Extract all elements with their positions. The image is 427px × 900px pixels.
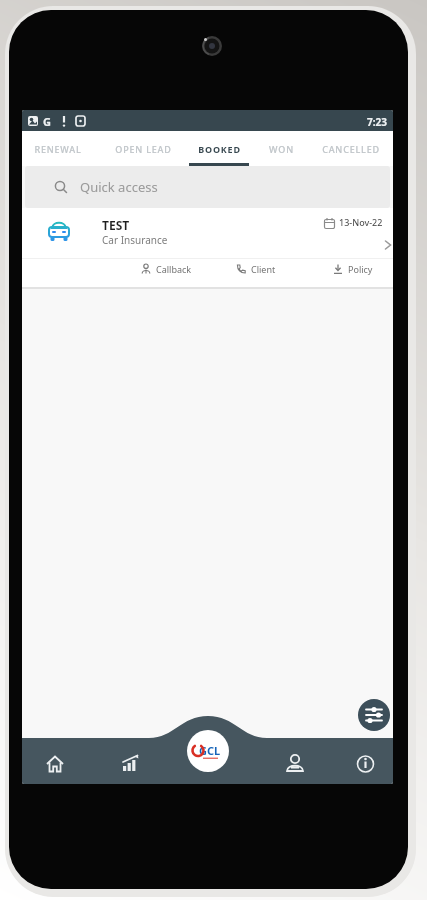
staticText: 13-Nov-22	[339, 216, 383, 228]
staticText: TEST	[102, 217, 130, 233]
button[interactable]: TEST	[22, 208, 393, 287]
button[interactable]: RENEWAL	[22, 143, 98, 155]
button[interactable]: Quick access	[25, 166, 390, 208]
staticText: WON	[269, 143, 294, 155]
button[interactable]: Client	[235, 263, 276, 275]
staticText: BOOKED	[198, 143, 241, 155]
button[interactable]: OPEN LEAD	[103, 143, 183, 155]
staticText: OPEN LEAD	[115, 143, 172, 155]
staticText: Client	[251, 263, 276, 275]
staticText: Policy	[348, 263, 373, 275]
button[interactable]: GCL	[187, 730, 229, 772]
button[interactable]	[171, 738, 245, 784]
staticText: CANCELLED	[322, 143, 380, 155]
button[interactable]: Policy	[332, 263, 373, 275]
button[interactable]: BOOKED	[179, 143, 259, 155]
button[interactable]: Callback	[140, 263, 192, 275]
button[interactable]: CANCELLED	[309, 143, 393, 155]
staticText: Car Insurance	[102, 233, 168, 247]
button[interactable]	[319, 738, 393, 784]
button[interactable]	[245, 738, 319, 784]
button[interactable]: WON	[241, 143, 321, 155]
button[interactable]	[358, 699, 390, 731]
button[interactable]	[22, 738, 97, 784]
staticText: 7:23	[367, 115, 387, 129]
button[interactable]	[97, 738, 171, 784]
staticText: GCL	[199, 743, 221, 758]
staticText: G	[43, 114, 51, 129]
staticText: Quick access	[80, 178, 158, 196]
staticText: RENEWAL	[34, 143, 82, 155]
staticText: Callback	[156, 263, 192, 275]
